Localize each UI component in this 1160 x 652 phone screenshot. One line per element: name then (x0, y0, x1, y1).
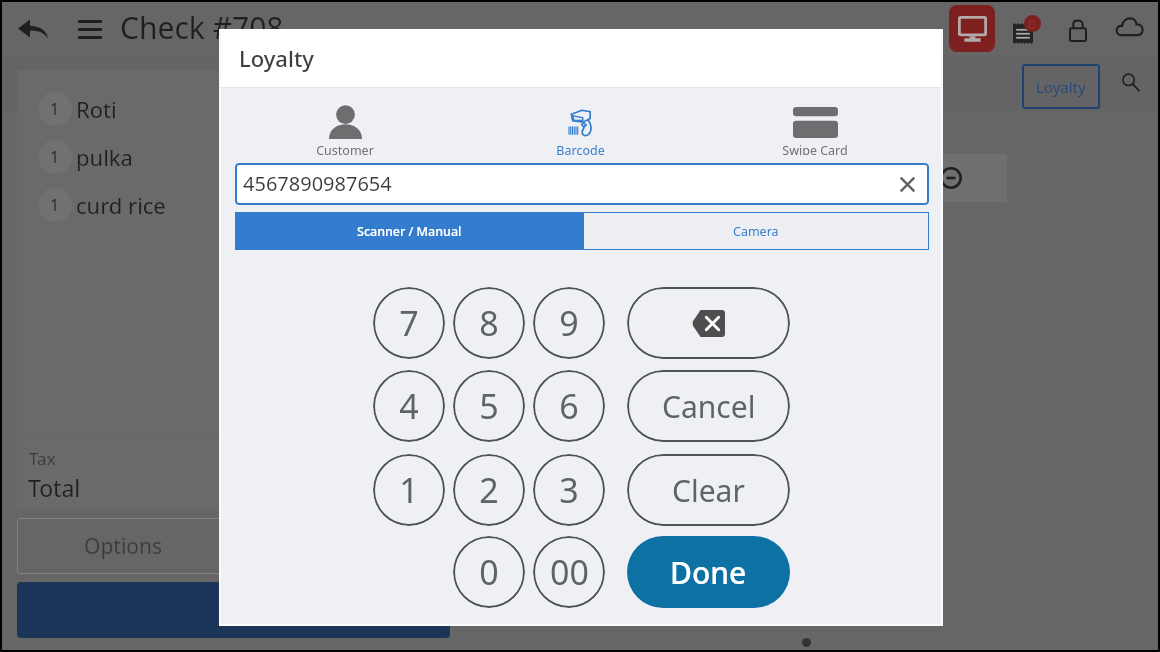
button[interactable]: Scanner / Manual (235, 212, 583, 250)
button[interactable]: Search (1116, 68, 1144, 96)
staticText: Check #708 (120, 7, 284, 48)
staticText: 5 (479, 383, 499, 429)
button[interactable]: 6 (533, 370, 605, 442)
button[interactable]: Swipe Card (751, 102, 879, 155)
button[interactable]: 1 (373, 454, 445, 526)
staticText: Swipe Card (782, 142, 848, 155)
staticText: Tax (29, 447, 56, 470)
button[interactable]: Clear text (893, 170, 921, 198)
button[interactable]: 7 (373, 287, 445, 359)
staticText: curd rice (76, 190, 166, 220)
staticText: 9 (559, 300, 579, 346)
staticText: Customer (316, 142, 374, 155)
button[interactable]: Barcode (516, 102, 644, 155)
staticText: 4 (399, 383, 419, 429)
staticText: Done (670, 552, 747, 593)
staticText: Clear (672, 470, 745, 511)
button[interactable]: Lock (1062, 14, 1094, 46)
button[interactable]: Camera (583, 212, 929, 250)
staticText: Scanner / Manual (357, 223, 462, 240)
staticText: 1 (50, 146, 60, 168)
staticText: Barcode (556, 142, 605, 155)
button[interactable]: 5 (453, 370, 525, 442)
staticText: Roti (76, 94, 117, 124)
button[interactable]: 1 (38, 140, 428, 174)
staticText: 1 (50, 194, 60, 216)
button[interactable]: 0 (453, 536, 525, 608)
button[interactable]: 1 (38, 92, 428, 126)
button[interactable]: Backspace (627, 287, 790, 359)
staticText: pulka (76, 142, 133, 172)
button[interactable]: Receipts (1007, 15, 1039, 47)
button[interactable]: 4567890987654 (235, 163, 929, 205)
staticText: Options (84, 532, 163, 561)
button[interactable]: 2 (453, 454, 525, 526)
staticText: 8 (479, 300, 499, 346)
staticText: Camera (733, 223, 779, 240)
button[interactable]: 3 (533, 454, 605, 526)
button[interactable]: 1 (38, 188, 428, 222)
staticText: Loyalty (1036, 77, 1086, 97)
staticText: 4567890987654 (243, 170, 392, 197)
button[interactable]: 8 (453, 287, 525, 359)
button[interactable]: Clear (627, 454, 790, 526)
button[interactable]: Display (949, 5, 995, 52)
button[interactable]: Cancel (627, 370, 790, 442)
button[interactable]: 4 (373, 370, 445, 442)
staticText: 2 (479, 467, 499, 513)
staticText: 1 (399, 467, 419, 513)
button[interactable]: Options (17, 518, 452, 574)
button[interactable]: Menu (70, 9, 110, 49)
button[interactable]: Cloud sync (1115, 16, 1147, 48)
button[interactable]: Loyalty (1022, 64, 1100, 109)
button[interactable] (17, 582, 450, 638)
staticText: Loyalty (239, 43, 314, 73)
staticText: Cancel (662, 386, 756, 427)
staticText: 7 (399, 300, 419, 346)
staticText: 00 (550, 549, 589, 595)
staticText: 0 (479, 549, 499, 595)
staticText: 3 (559, 467, 579, 513)
button[interactable]: 9 (533, 287, 605, 359)
staticText: 1 (50, 98, 60, 120)
button[interactable]: Back (13, 9, 53, 49)
staticText: Total (28, 472, 81, 503)
button[interactable]: Customer (281, 102, 409, 155)
button[interactable]: 00 (533, 536, 605, 608)
staticText: 0 (1028, 15, 1036, 33)
button[interactable]: Done (627, 536, 790, 608)
staticText: 6 (559, 383, 579, 429)
